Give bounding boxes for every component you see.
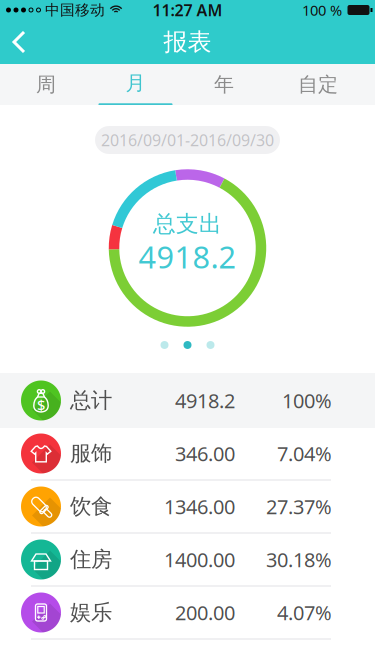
staticText: 7.04% xyxy=(277,440,332,467)
staticText: 总计 xyxy=(70,387,112,414)
button[interactable]: 自定 xyxy=(269,64,367,105)
staticText: 4918.2 xyxy=(175,387,235,414)
staticText: 娱乐 xyxy=(70,599,112,626)
staticText: 11:27 AM xyxy=(152,0,222,21)
staticText: 27.37% xyxy=(266,493,332,520)
staticText: 总支出 xyxy=(153,210,222,238)
button[interactable]: 服饰 xyxy=(0,428,375,479)
staticText: 中国移动 xyxy=(45,1,105,19)
staticText: 346.00 xyxy=(175,440,235,467)
staticText: 100 % xyxy=(302,0,342,20)
staticText: 4918.2 xyxy=(138,236,236,277)
button[interactable]: 年 xyxy=(179,64,269,105)
staticText: 饮食 xyxy=(70,493,112,520)
staticText: 30.18% xyxy=(266,546,332,573)
button[interactable]: 娱乐 xyxy=(0,587,375,638)
button[interactable]: Back xyxy=(0,20,44,64)
staticText: 年 xyxy=(214,72,234,97)
staticText: 100% xyxy=(282,387,332,414)
button[interactable]: 饮食 xyxy=(0,481,375,532)
staticText: 月 xyxy=(125,71,145,95)
staticText: 1346.00 xyxy=(164,493,235,520)
button[interactable]: 住房 xyxy=(0,534,375,585)
staticText: 周 xyxy=(36,72,56,97)
staticText: 住房 xyxy=(70,546,112,573)
staticText: 200.00 xyxy=(175,599,235,626)
staticText: $ xyxy=(37,395,45,415)
staticText: 4.07% xyxy=(277,599,332,626)
staticText: 1400.00 xyxy=(164,546,235,573)
button[interactable]: $ xyxy=(0,373,375,428)
button[interactable]: 2016/09/01-2016/09/30 xyxy=(95,126,280,154)
staticText: 自定 xyxy=(298,72,338,97)
button[interactable]: 周 xyxy=(0,64,92,105)
staticText: 服饰 xyxy=(70,440,112,467)
staticText: 2016/09/01-2016/09/30 xyxy=(101,129,274,151)
button[interactable]: 月 xyxy=(92,64,179,105)
staticText: 报表 xyxy=(163,27,211,57)
